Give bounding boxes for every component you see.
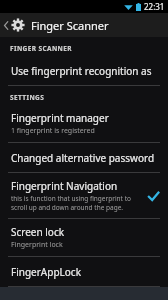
staticText: FingerAppLock [11, 265, 81, 279]
staticText: Finger Scanner [31, 18, 109, 33]
staticText: Fingerprint manager [11, 111, 109, 125]
button[interactable]: Changed alternative password [0, 143, 168, 172]
staticText: Fingerprint Navigation [11, 179, 118, 193]
staticText: SETTINGS [10, 93, 45, 102]
button[interactable]: Screen lock [0, 219, 168, 256]
staticText: Use fingerprint recognition as an altern… [11, 64, 157, 78]
button[interactable]: FingerAppLock [0, 257, 168, 286]
staticText: Changed alternative password [11, 151, 155, 165]
button[interactable]: Finger Scanner [0, 13, 168, 37]
button[interactable]: Use fingerprint recognition as an altern… [0, 56, 168, 85]
button[interactable]: Fingerprint Navigation [0, 173, 168, 218]
staticText: 1 fingerprint is registered [11, 126, 95, 136]
staticText: Screen lock [11, 225, 65, 239]
staticText: 22:31 [144, 1, 165, 12]
button[interactable]: Fingerprint manager [0, 105, 168, 142]
staticText: FINGER SCANNER [10, 44, 73, 53]
staticText: Fingerprint lock [11, 240, 63, 250]
staticText: this is function that using fingerprint … [11, 194, 131, 212]
button[interactable]: Fingerprint Navigation toggle, checked [144, 187, 162, 205]
